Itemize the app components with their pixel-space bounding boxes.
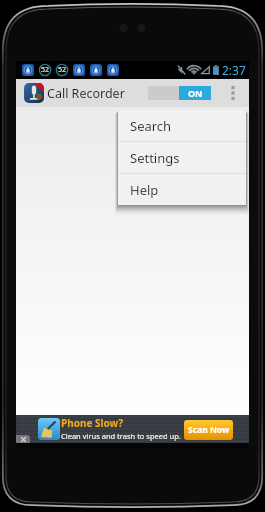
staticText: ON bbox=[188, 87, 203, 99]
staticText: 52 bbox=[58, 65, 67, 75]
button[interactable]: Close ad bbox=[16, 435, 30, 443]
staticText: Phone Slow? bbox=[61, 416, 124, 430]
button[interactable]: Help bbox=[118, 174, 246, 205]
staticText: 2:37 bbox=[222, 62, 246, 78]
button[interactable]: Settings bbox=[118, 142, 246, 173]
staticText: Help bbox=[130, 181, 159, 199]
staticText: Settings bbox=[130, 149, 180, 167]
staticText: Call Recorder bbox=[47, 85, 125, 102]
button[interactable]: Recording on bbox=[148, 86, 211, 100]
staticText: Clean virus and trash to speed up. bbox=[61, 431, 181, 441]
staticText: Scan Now bbox=[188, 424, 230, 436]
button[interactable]: Search bbox=[118, 110, 246, 141]
staticText: 52 bbox=[41, 65, 50, 75]
button[interactable]: More options bbox=[228, 79, 238, 107]
staticText: Search bbox=[130, 117, 172, 135]
button[interactable]: Scan Now bbox=[184, 420, 233, 440]
